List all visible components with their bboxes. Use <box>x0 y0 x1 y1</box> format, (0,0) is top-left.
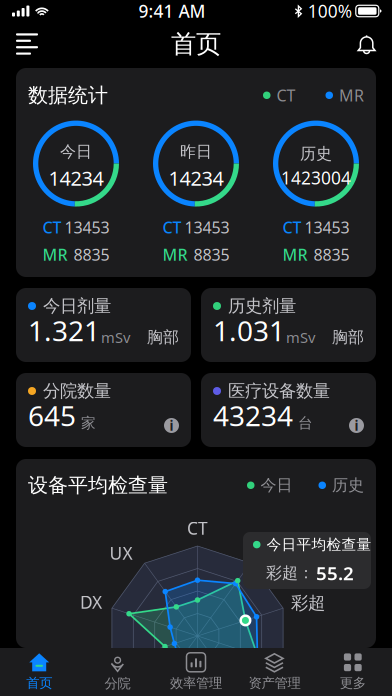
staticText: 今日平均检查量 <box>266 536 371 554</box>
staticText: 14234 <box>168 165 223 191</box>
staticText: 胸部 <box>147 327 179 347</box>
staticText: 家 <box>81 414 96 432</box>
button[interactable]: 资产管理 <box>235 648 314 696</box>
staticText: 1.031 <box>213 312 285 349</box>
staticText: 效率管理 <box>170 675 222 691</box>
staticText: 9:41 AM <box>139 0 206 22</box>
staticText: 更多 <box>340 675 366 691</box>
staticText: 胸部 <box>332 327 364 347</box>
button[interactable]: 分院数量 <box>16 373 191 447</box>
staticText: 台 <box>298 414 313 432</box>
staticText: 彩超： <box>266 563 314 583</box>
staticText: 历史剂量 <box>228 295 296 317</box>
staticText: MR <box>339 85 364 106</box>
button[interactable]: 通知 <box>341 24 392 63</box>
staticText: 首页 <box>26 675 52 691</box>
button[interactable]: 效率管理 <box>157 648 235 696</box>
staticText: 8835 <box>313 244 349 265</box>
staticText: 14234 <box>48 165 103 191</box>
staticText: 设备平均检查量 <box>28 473 168 498</box>
staticText: mSv <box>286 327 315 347</box>
button[interactable]: 更多 <box>314 648 392 696</box>
staticText: CT <box>42 217 61 238</box>
staticText: UX <box>109 541 132 564</box>
button[interactable]: 医疗设备数量 <box>201 373 376 447</box>
staticText: CT <box>276 85 295 106</box>
staticText: 100% <box>308 0 352 22</box>
staticText: 13453 <box>304 217 349 238</box>
staticText: CT <box>162 217 181 238</box>
staticText: CT <box>187 516 208 539</box>
staticText: 1.321 <box>28 312 100 349</box>
staticText: 昨日 <box>180 142 212 162</box>
staticText: 13453 <box>184 217 229 238</box>
staticText: 历史 <box>300 144 332 163</box>
staticText: 13453 <box>64 217 109 238</box>
staticText: 资产管理 <box>248 675 300 691</box>
staticText: i <box>354 417 358 434</box>
staticText: 55.2 <box>316 561 354 585</box>
staticText: mSv <box>101 327 130 347</box>
button[interactable]: 分院 <box>78 648 157 696</box>
staticText: 分院数量 <box>43 380 111 402</box>
staticText: 医疗设备数量 <box>228 380 330 402</box>
staticText: 数据统计 <box>28 83 108 108</box>
staticText: CT <box>282 217 301 238</box>
staticText: 今日 <box>260 475 292 495</box>
staticText: 645 <box>28 397 76 434</box>
staticText: 1423004 <box>281 166 351 189</box>
staticText: i <box>169 417 173 434</box>
button[interactable]: 今日剂量 <box>16 288 191 362</box>
button[interactable]: 首页 <box>0 648 78 696</box>
staticText: 历史 <box>332 475 364 495</box>
staticText: MR <box>42 244 67 265</box>
staticText: 分院 <box>105 675 131 692</box>
staticText: 首页 <box>171 28 221 59</box>
staticText: MR <box>282 244 307 265</box>
staticText: DX <box>80 590 102 613</box>
button[interactable]: 菜单 <box>0 23 54 64</box>
staticText: 8835 <box>73 244 109 265</box>
staticText: 今日剂量 <box>43 295 111 317</box>
staticText: 彩超 <box>291 592 325 614</box>
staticText: 43234 <box>213 397 293 434</box>
staticText: 今日 <box>60 142 92 162</box>
staticText: MR <box>162 244 187 265</box>
button[interactable]: 历史剂量 <box>201 288 376 362</box>
staticText: 8835 <box>193 244 229 265</box>
